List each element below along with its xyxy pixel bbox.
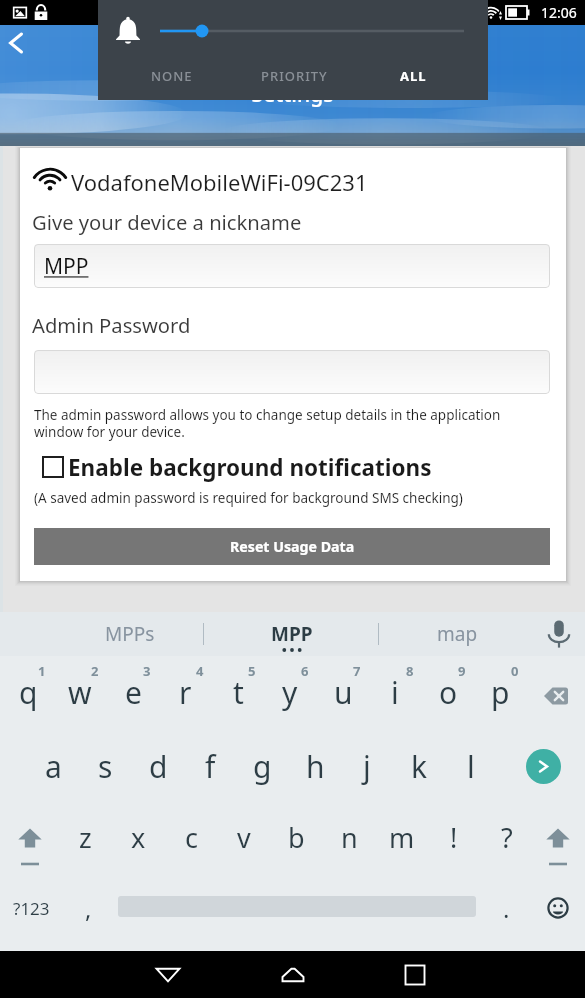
button[interactable]: u	[317, 657, 369, 728]
button[interactable]: k	[393, 731, 445, 802]
staticText: v	[237, 819, 251, 856]
staticText: MPPs	[105, 621, 155, 647]
staticText: Admin Password	[32, 311, 191, 339]
staticText: s	[98, 746, 113, 787]
button[interactable]: y	[264, 657, 316, 728]
button[interactable]: Back	[0, 25, 36, 61]
button[interactable]: d	[132, 731, 184, 802]
staticText: 8	[406, 662, 414, 680]
staticText: ,	[85, 892, 92, 925]
staticText: ALL	[400, 67, 427, 85]
button[interactable]: Shift	[532, 802, 584, 873]
staticText: 9	[458, 662, 466, 680]
staticText: Enable background notifications	[68, 452, 432, 482]
button[interactable]: map	[380, 612, 534, 656]
button[interactable]: Emoji	[532, 873, 584, 943]
button[interactable]: e	[107, 657, 159, 728]
button[interactable]: NONE	[107, 58, 237, 94]
staticText: f	[205, 746, 216, 787]
staticText: t	[233, 672, 244, 713]
button[interactable]: PRIORITY	[229, 58, 359, 94]
button[interactable]: c	[165, 802, 217, 873]
staticText: 6	[301, 662, 309, 680]
button[interactable]: MPP	[208, 612, 376, 656]
button[interactable]: g	[236, 731, 288, 802]
staticText: MPP	[44, 252, 89, 281]
staticText: c	[185, 819, 198, 856]
button[interactable]: j	[341, 731, 393, 802]
staticText: p	[491, 672, 510, 713]
button[interactable]: r	[159, 657, 211, 728]
button[interactable]: ,	[62, 873, 114, 943]
button[interactable]: f	[184, 731, 236, 802]
button[interactable]: Recents	[385, 951, 445, 998]
button[interactable]: i	[369, 657, 421, 728]
staticText: 2	[91, 662, 99, 680]
staticText: 5	[248, 662, 256, 680]
staticText: o	[439, 672, 458, 713]
staticText: b	[288, 819, 305, 856]
button[interactable]: Home	[263, 951, 323, 998]
button[interactable]: w	[54, 657, 106, 728]
button[interactable]: x	[112, 802, 164, 873]
staticText: x	[131, 819, 146, 856]
staticText: d	[149, 746, 168, 787]
staticText: 7	[353, 662, 361, 680]
staticText: The admin password allows you to change …	[34, 406, 519, 441]
button[interactable]: Space	[114, 873, 480, 943]
button[interactable]: .	[480, 873, 532, 943]
staticText: y	[282, 672, 298, 713]
button[interactable]: Voice input	[534, 612, 584, 656]
button[interactable]: Next	[517, 731, 569, 802]
staticText: k	[411, 746, 428, 787]
button[interactable]: MPP	[34, 244, 550, 288]
staticText: z	[79, 819, 92, 856]
button[interactable]: ?123	[0, 873, 62, 943]
staticText: e	[125, 672, 142, 713]
button[interactable]: !	[428, 802, 480, 873]
button[interactable]: b	[270, 802, 322, 873]
staticText: 12:06	[541, 3, 577, 22]
staticText: Settings	[0, 80, 585, 109]
staticText: r	[179, 672, 192, 713]
button[interactable]: q	[2, 657, 54, 728]
staticText: MPP	[271, 621, 313, 647]
button[interactable]: z	[59, 802, 111, 873]
staticText: ?	[501, 819, 513, 856]
button[interactable]: n	[323, 802, 375, 873]
staticText: g	[253, 746, 272, 787]
button[interactable]: m	[376, 802, 428, 873]
button[interactable]: Delete	[530, 660, 582, 731]
button[interactable]: Enable background notifications	[42, 452, 432, 482]
button[interactable]: MPPs	[60, 612, 199, 656]
staticText: Reset Usage Data	[230, 537, 355, 556]
button[interactable]	[34, 350, 550, 394]
staticText: ?123	[13, 897, 50, 920]
staticText: 4	[196, 662, 204, 680]
staticText: Give your device a nickname	[32, 208, 302, 236]
staticText: (A saved admin password is required for …	[34, 489, 463, 507]
button[interactable]: p	[474, 657, 526, 728]
button[interactable]: Back	[138, 951, 198, 998]
staticText: u	[334, 672, 353, 713]
button[interactable]: ALL	[348, 58, 478, 94]
button[interactable]: Reset Usage Data	[34, 528, 550, 565]
staticText: i	[391, 672, 399, 713]
button[interactable]: a	[27, 731, 79, 802]
button[interactable]: s	[79, 731, 131, 802]
button[interactable]: h	[289, 731, 341, 802]
staticText: h	[306, 746, 325, 787]
button[interactable]: o	[422, 657, 474, 728]
button[interactable]: t	[212, 657, 264, 728]
staticText: m	[389, 819, 415, 856]
button[interactable]: l	[445, 731, 497, 802]
button[interactable]: Shift	[4, 802, 56, 873]
staticText: 3	[143, 662, 151, 680]
staticText: n	[341, 819, 358, 856]
staticText: a	[45, 746, 62, 787]
staticText: w	[68, 672, 92, 713]
staticText: 1	[38, 662, 46, 680]
button[interactable]: v	[218, 802, 270, 873]
staticText: !	[450, 819, 458, 856]
button[interactable]: ?	[481, 802, 533, 873]
